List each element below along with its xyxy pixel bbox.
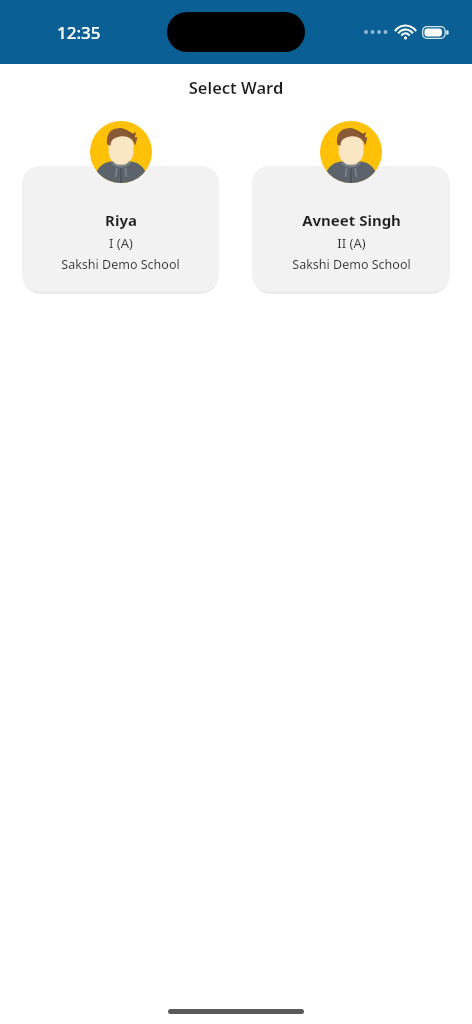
staticText: I (A) [109, 234, 133, 252]
staticText: Sakshi Demo School [292, 256, 411, 273]
staticText: Avneet Singh [302, 210, 401, 230]
staticText: II (A) [337, 234, 366, 252]
staticText: Select Ward [0, 76, 472, 98]
button[interactable]: Avneet Singh [252, 111, 450, 294]
staticText: Riya [105, 210, 137, 230]
staticText: 12:35 [57, 21, 101, 44]
staticText: Sakshi Demo School [61, 256, 180, 273]
button[interactable]: Riya [22, 111, 219, 294]
